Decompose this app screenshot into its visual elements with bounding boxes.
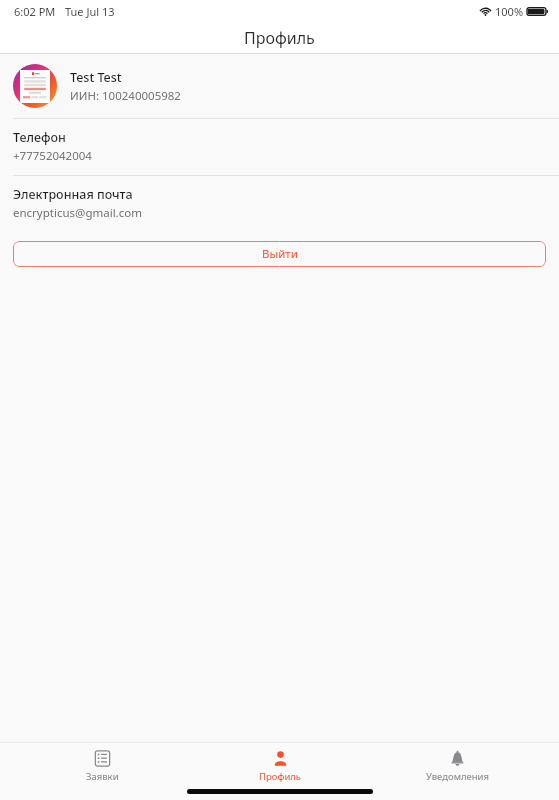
other: Уведомления xyxy=(449,750,466,767)
staticText: Tue Jul 13 xyxy=(65,4,115,19)
button[interactable]: Заявки xyxy=(27,743,177,783)
button[interactable]: Телефон xyxy=(0,119,559,175)
other: Профиль xyxy=(272,750,289,767)
staticText: Уведомления xyxy=(426,770,489,783)
staticText: Электронная почта xyxy=(13,186,133,203)
staticText: encrypticus@gmail.com xyxy=(13,205,142,221)
staticText: ИИН: 100240005982 xyxy=(70,88,181,104)
staticText: Телефон xyxy=(13,129,66,146)
button[interactable]: Профиль xyxy=(205,743,355,783)
staticText: Test Test xyxy=(70,69,122,86)
button[interactable]: Выйти xyxy=(13,241,546,267)
staticText: 100% xyxy=(495,4,524,19)
other: Заявки xyxy=(94,750,111,767)
staticText: Профиль xyxy=(244,27,315,49)
button[interactable]: Уведомления xyxy=(382,743,532,783)
staticText: +77752042004 xyxy=(13,148,92,164)
button[interactable]: Test Test xyxy=(0,54,559,118)
staticText: Профиль xyxy=(259,770,302,783)
staticText: 6:02 PM xyxy=(14,4,56,19)
button[interactable]: Электронная почта xyxy=(0,176,559,232)
staticText: Заявки xyxy=(86,770,119,783)
staticText: Выйти xyxy=(262,246,298,262)
